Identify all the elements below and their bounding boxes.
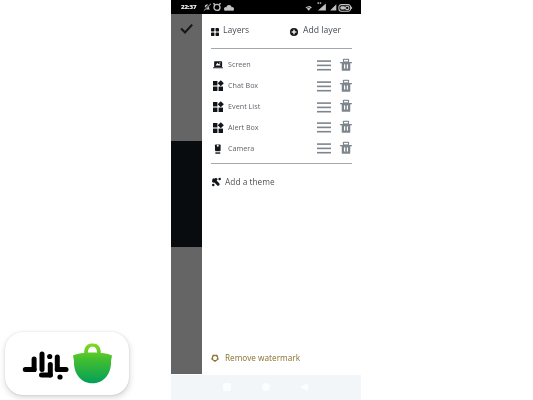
staticText: 22:37 xyxy=(181,3,197,11)
staticText: Event List xyxy=(228,101,261,111)
button[interactable]: Delete Alert Box xyxy=(340,120,352,133)
button[interactable]: Delete Screen xyxy=(340,58,352,71)
button[interactable]: Delete Chat Box xyxy=(340,79,352,92)
button[interactable] xyxy=(202,99,361,120)
button[interactable]: Add layer xyxy=(288,24,350,40)
button[interactable]: Delete Event List xyxy=(340,99,352,112)
staticText: Chat Box xyxy=(228,80,259,90)
button[interactable]: Reorder Screen xyxy=(317,60,331,70)
button[interactable]: Bazaar xyxy=(5,332,129,395)
button[interactable] xyxy=(202,120,361,141)
button[interactable]: Home xyxy=(259,380,273,394)
button[interactable] xyxy=(202,141,361,162)
button[interactable]: Back xyxy=(297,380,311,394)
staticText: Screen xyxy=(228,59,251,69)
staticText: Add layer xyxy=(303,24,342,36)
button[interactable]: Reorder Event List xyxy=(317,102,331,112)
staticText: Camera xyxy=(228,143,255,153)
button[interactable]: Done xyxy=(179,21,194,36)
button[interactable]: Layers xyxy=(209,24,257,40)
staticText: Add a theme xyxy=(225,176,275,187)
button[interactable] xyxy=(207,172,287,190)
staticText: Alert Box xyxy=(228,122,259,132)
button[interactable] xyxy=(207,349,307,365)
button[interactable]: Reorder Camera xyxy=(317,143,331,153)
button[interactable]: Reorder Chat Box xyxy=(317,81,331,91)
button[interactable]: Recents xyxy=(220,380,234,394)
staticText: Remove watermark xyxy=(225,352,301,363)
button[interactable] xyxy=(202,57,361,78)
staticText: Layers xyxy=(223,24,250,36)
button[interactable] xyxy=(202,78,361,99)
button[interactable]: Reorder Alert Box xyxy=(317,122,331,132)
button[interactable]: Delete Camera xyxy=(340,141,352,154)
